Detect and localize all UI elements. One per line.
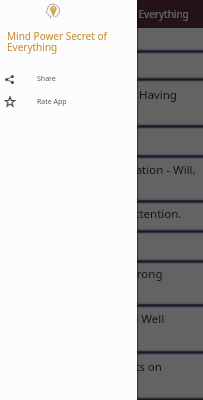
staticText: Chapter 6 - The Secret of Attention. <box>0 206 182 222</box>
staticText: Mind Power Secret of Everything <box>36 7 189 21</box>
button[interactable]: Chapter 7 - Memory <box>0 231 203 261</box>
button[interactable]: Chapter 1 - The Mind <box>0 28 203 51</box>
button[interactable]: Chapter 3 - The Secret of Having Everyth… <box>0 79 203 126</box>
staticText: Chapter 8 - Make Your Mind Strong and He… <box>0 266 163 295</box>
staticText: Chapter 10 - How Thoughts on Success Wor… <box>0 359 162 388</box>
staticText: Rate App <box>37 97 67 107</box>
button[interactable]: Chapter 5 - Concentration - Will, Desire <box>0 156 203 201</box>
button[interactable]: Chapter 4 - Mind Cure <box>0 126 203 156</box>
staticText: Chapter 1 - The Mind <box>8 22 122 38</box>
staticText: Mind Power Secret of Everything <box>7 29 131 54</box>
staticText: Chapter 5 - Concentration - Will, Desire <box>24 162 196 191</box>
staticText: Chapter 3 - The Secret of Having Everyth… <box>3 87 177 116</box>
button[interactable]: Chapter 8 - Make Your Mind Strong and He… <box>0 261 203 305</box>
button[interactable]: Chapter 2 - Desire <box>0 51 203 79</box>
button[interactable]: Rate App <box>0 91 137 113</box>
button[interactable]: Share <box>0 68 137 90</box>
button[interactable]: Chapter 10 - How Thoughts on Success Wor… <box>0 352 203 399</box>
button[interactable]: Chapter 9 - How to Sleep Well at Night <box>0 305 203 352</box>
staticText: Share <box>37 74 56 84</box>
staticText: Chapter 9 - How to Sleep Well at Night <box>5 311 165 340</box>
button[interactable]: Chapter 6 - The Secret of Attention. <box>0 201 203 231</box>
